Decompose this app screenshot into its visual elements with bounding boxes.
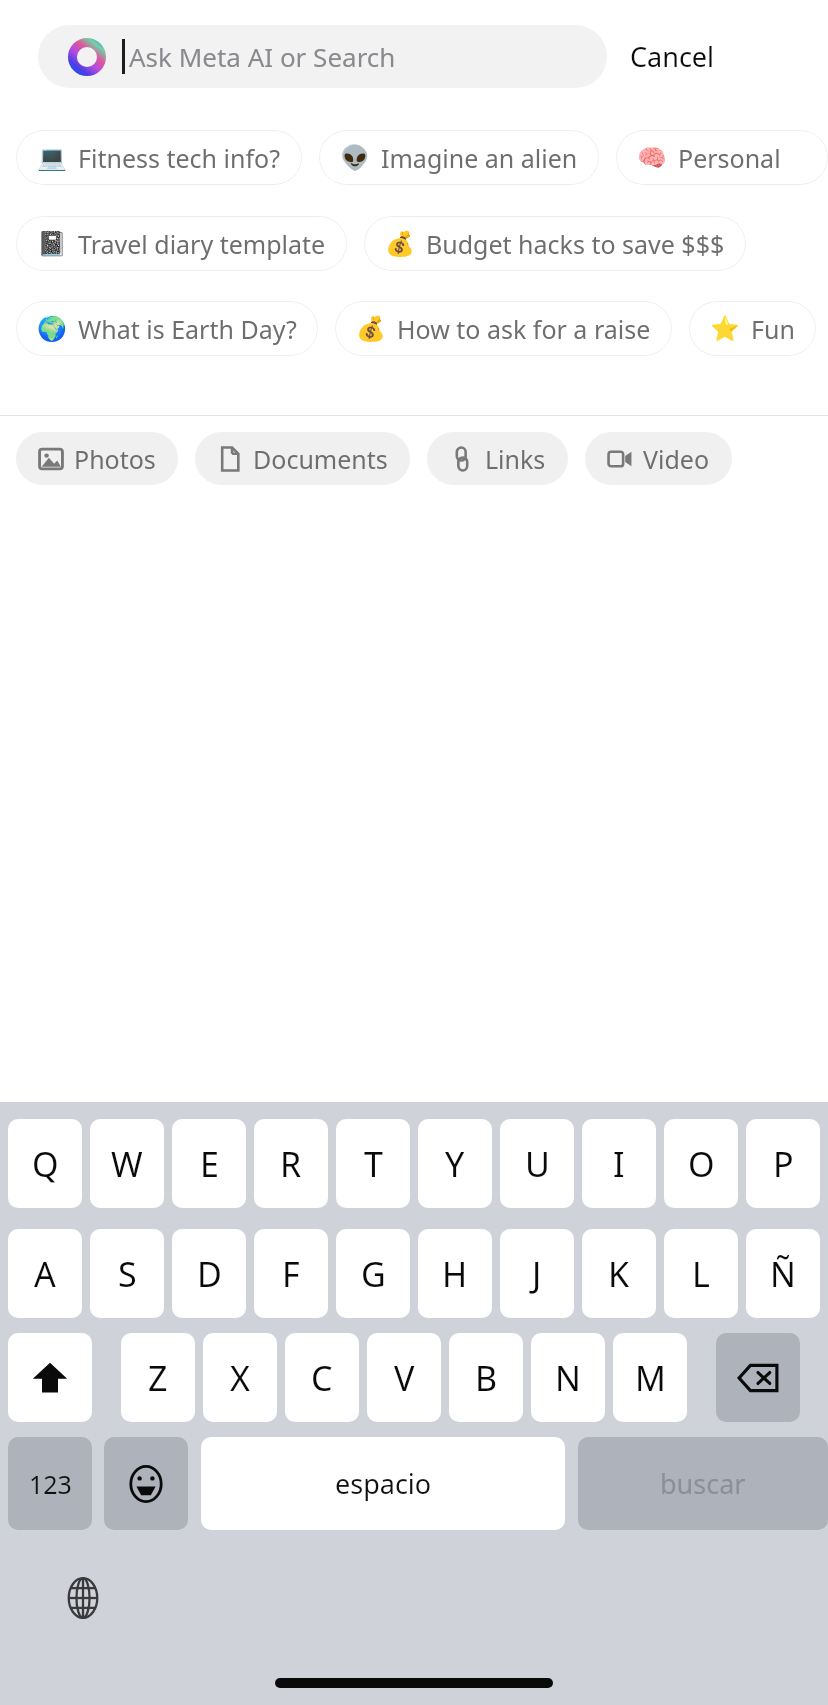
staticText: Links (485, 442, 546, 476)
button[interactable]: Links (427, 432, 568, 485)
button[interactable]: M (613, 1333, 687, 1422)
staticText: Z (148, 1355, 168, 1401)
button[interactable]: buscar (578, 1437, 828, 1530)
staticText: C (311, 1355, 333, 1401)
button[interactable]: Photos (16, 432, 178, 485)
staticText: buscar (660, 1465, 746, 1502)
button[interactable]: H (418, 1229, 492, 1318)
staticText: O (688, 1141, 715, 1187)
staticText: A (34, 1251, 56, 1297)
button[interactable]: Q (8, 1119, 82, 1208)
staticText: U (525, 1141, 550, 1187)
staticText: Q (32, 1141, 59, 1187)
button[interactable]: J (500, 1229, 574, 1318)
staticText: How to ask for a raise (397, 312, 651, 346)
staticText: D (197, 1251, 222, 1297)
button[interactable]: D (172, 1229, 246, 1318)
staticText: M (635, 1355, 666, 1401)
button[interactable]: K (582, 1229, 656, 1318)
staticText: I (613, 1141, 625, 1187)
button[interactable]: O (664, 1119, 738, 1208)
button[interactable]: C (285, 1333, 359, 1422)
staticText: R (280, 1141, 302, 1187)
staticText: P (773, 1141, 794, 1187)
staticText: V (394, 1355, 415, 1401)
staticText: T (364, 1141, 383, 1187)
button[interactable]: V (367, 1333, 441, 1422)
button[interactable]: Backspace (716, 1333, 800, 1422)
button[interactable]: Video (585, 432, 732, 485)
button[interactable]: 123 (8, 1437, 92, 1530)
button[interactable]: Change keyboard language (52, 1567, 114, 1629)
staticText: 📓 (37, 230, 67, 258)
staticText: 💰 (356, 315, 386, 343)
button[interactable]: 💻 (16, 130, 302, 185)
button[interactable]: ⭐ (689, 301, 816, 356)
button[interactable]: B (449, 1333, 523, 1422)
button[interactable]: G (336, 1229, 410, 1318)
staticText: J (532, 1251, 542, 1297)
button[interactable]: 💰 (364, 216, 746, 271)
staticText: Ask Meta AI or Search (129, 39, 396, 74)
staticText: G (361, 1251, 386, 1297)
staticText: 🌍 (37, 315, 67, 343)
other: Meta AI (68, 38, 106, 76)
staticText: ⭐ (710, 315, 740, 343)
staticText: 123 (29, 1467, 72, 1501)
button[interactable]: espacio (201, 1437, 565, 1530)
button[interactable]: Ñ (746, 1229, 820, 1318)
staticText: 🧠 (637, 144, 667, 172)
staticText: W (111, 1141, 143, 1187)
button[interactable]: Z (121, 1333, 195, 1422)
button[interactable]: I (582, 1119, 656, 1208)
staticText: Documents (253, 442, 388, 476)
button[interactable]: T (336, 1119, 410, 1208)
staticText: 💰 (385, 230, 415, 258)
staticText: Y (445, 1141, 465, 1187)
button[interactable]: F (254, 1229, 328, 1318)
staticText: 👽 (340, 144, 370, 172)
staticText: Travel diary template (78, 227, 326, 261)
button[interactable]: P (746, 1119, 820, 1208)
button[interactable]: R (254, 1119, 328, 1208)
button[interactable]: 💰 (335, 301, 672, 356)
staticText: Cancel (630, 38, 715, 75)
staticText: Photos (74, 442, 156, 476)
button[interactable]: Y (418, 1119, 492, 1208)
button[interactable]: S (90, 1229, 164, 1318)
button[interactable]: X (203, 1333, 277, 1422)
button[interactable]: 🌍 (16, 301, 318, 356)
staticText: Imagine an alien (381, 141, 578, 175)
staticText: N (555, 1355, 581, 1401)
button[interactable]: Emoji (104, 1437, 188, 1530)
button[interactable]: Documents (195, 432, 410, 485)
staticText: X (230, 1355, 250, 1401)
button[interactable]: E (172, 1119, 246, 1208)
staticText: F (282, 1251, 300, 1297)
staticText: H (442, 1251, 468, 1297)
button[interactable]: L (664, 1229, 738, 1318)
button[interactable]: 📓 (16, 216, 347, 271)
staticText: Video (643, 442, 710, 476)
button[interactable]: Meta AI (38, 25, 607, 88)
staticText: Fitness tech info? (78, 141, 281, 175)
staticText: Budget hacks to save $$$ (426, 227, 725, 261)
button[interactable]: W (90, 1119, 164, 1208)
staticText: K (608, 1251, 630, 1297)
button[interactable]: 🧠 (616, 130, 828, 185)
staticText: E (200, 1141, 219, 1187)
button[interactable]: U (500, 1119, 574, 1208)
button[interactable]: 👽 (319, 130, 599, 185)
staticText: 💻 (37, 144, 67, 172)
staticText: What is Earth Day? (78, 312, 297, 346)
button[interactable]: Shift (8, 1333, 92, 1422)
button[interactable]: A (8, 1229, 82, 1318)
staticText: Fun (751, 312, 795, 346)
staticText: Ñ (770, 1251, 796, 1297)
staticText: B (475, 1355, 498, 1401)
button[interactable]: Cancel (624, 28, 721, 85)
staticText: S (118, 1251, 137, 1297)
staticText: espacio (335, 1465, 432, 1502)
button[interactable]: N (531, 1333, 605, 1422)
staticText: L (692, 1251, 710, 1297)
